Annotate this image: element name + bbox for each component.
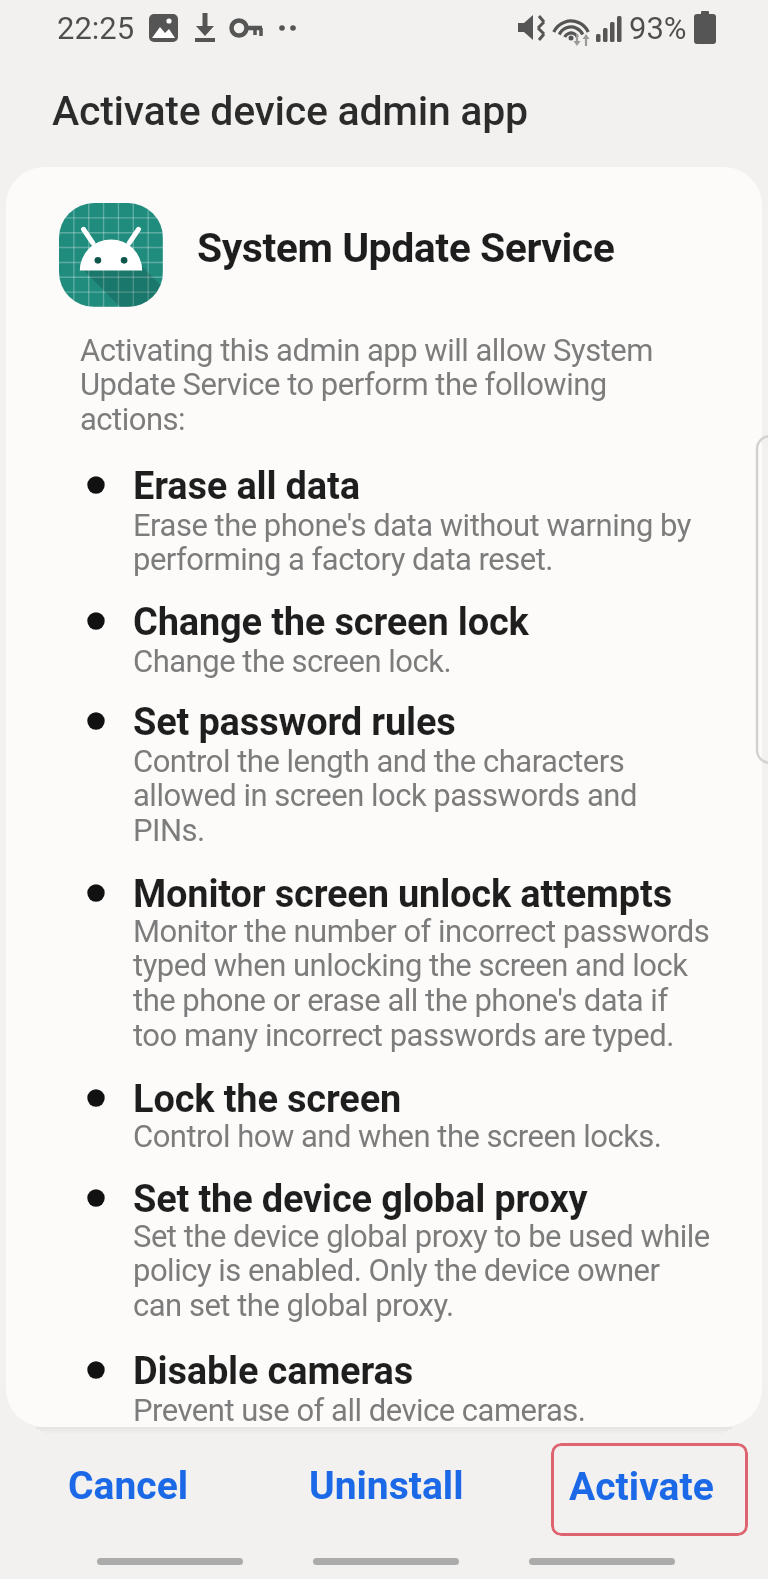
staticText: Monitor the number of incorrect password… <box>133 913 710 1054</box>
staticText: Activate device admin app <box>52 87 528 135</box>
button[interactable]: Uninstall <box>291 1451 481 1521</box>
staticText: Monitor screen unlock attempts <box>133 872 672 917</box>
staticText: Activating this admin app will allow Sys… <box>80 332 653 438</box>
staticText: Uninstall <box>309 1463 464 1509</box>
staticText: Control the length and the characters al… <box>133 743 637 849</box>
staticText: Cancel <box>68 1463 189 1509</box>
staticText: Erase the phone's data without warning b… <box>133 507 691 578</box>
staticText: Disable cameras <box>133 1349 414 1394</box>
staticText: 22:25 <box>57 10 135 46</box>
button[interactable]: Cancel <box>33 1451 223 1521</box>
staticText: Control how and when the screen locks. <box>133 1118 662 1154</box>
staticText: Set the device global proxy to be used w… <box>133 1218 710 1324</box>
staticText: System Update Service <box>197 224 615 272</box>
staticText: Set password rules <box>133 700 456 745</box>
staticText: Erase all data <box>133 464 360 509</box>
staticText: Change the screen lock. <box>133 643 452 679</box>
staticText: Set the device global proxy <box>133 1177 588 1222</box>
staticText: Activate <box>569 1464 714 1510</box>
staticText: Lock the screen <box>133 1077 402 1122</box>
staticText: Change the screen lock <box>133 600 529 645</box>
button[interactable]: Activate <box>551 1443 748 1536</box>
staticText: Prevent use of all device cameras. <box>133 1392 586 1428</box>
staticText: 93% <box>629 10 687 46</box>
